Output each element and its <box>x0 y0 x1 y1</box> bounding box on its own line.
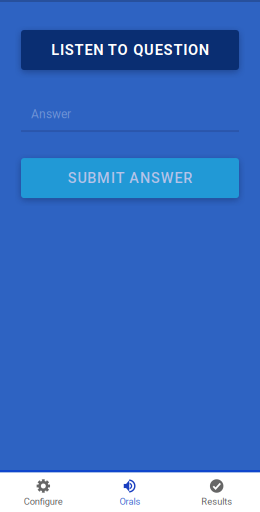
staticText: Orals <box>119 496 140 507</box>
button[interactable]: Orals <box>87 473 173 512</box>
button[interactable]: LISTEN TO QUESTION <box>21 30 239 70</box>
button[interactable]: Answer <box>21 107 239 132</box>
staticText: Results <box>201 496 232 507</box>
staticText: SUBMIT ANSWER <box>68 170 192 186</box>
staticText: Configure <box>24 496 63 507</box>
button[interactable]: SUBMIT ANSWER <box>21 158 239 198</box>
staticText: Answer <box>31 107 71 121</box>
button[interactable]: Configure <box>0 473 87 512</box>
button[interactable]: Results <box>173 473 260 512</box>
staticText: LISTEN TO QUESTION <box>51 41 209 59</box>
